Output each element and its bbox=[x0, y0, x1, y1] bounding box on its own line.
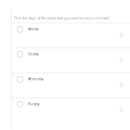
staticText: Pick the days of the week that you want … bbox=[14, 15, 110, 21]
staticText: Thursday bbox=[28, 102, 39, 106]
staticText: Monday bbox=[28, 27, 38, 31]
staticText: Wednesday bbox=[28, 77, 43, 81]
button[interactable]: Wednesday bbox=[0, 73, 130, 98]
button[interactable]: Thursday bbox=[0, 98, 130, 123]
staticText: Tuesday bbox=[28, 52, 38, 56]
button[interactable]: Monday bbox=[0, 23, 130, 48]
button[interactable]: Tuesday bbox=[0, 48, 130, 73]
